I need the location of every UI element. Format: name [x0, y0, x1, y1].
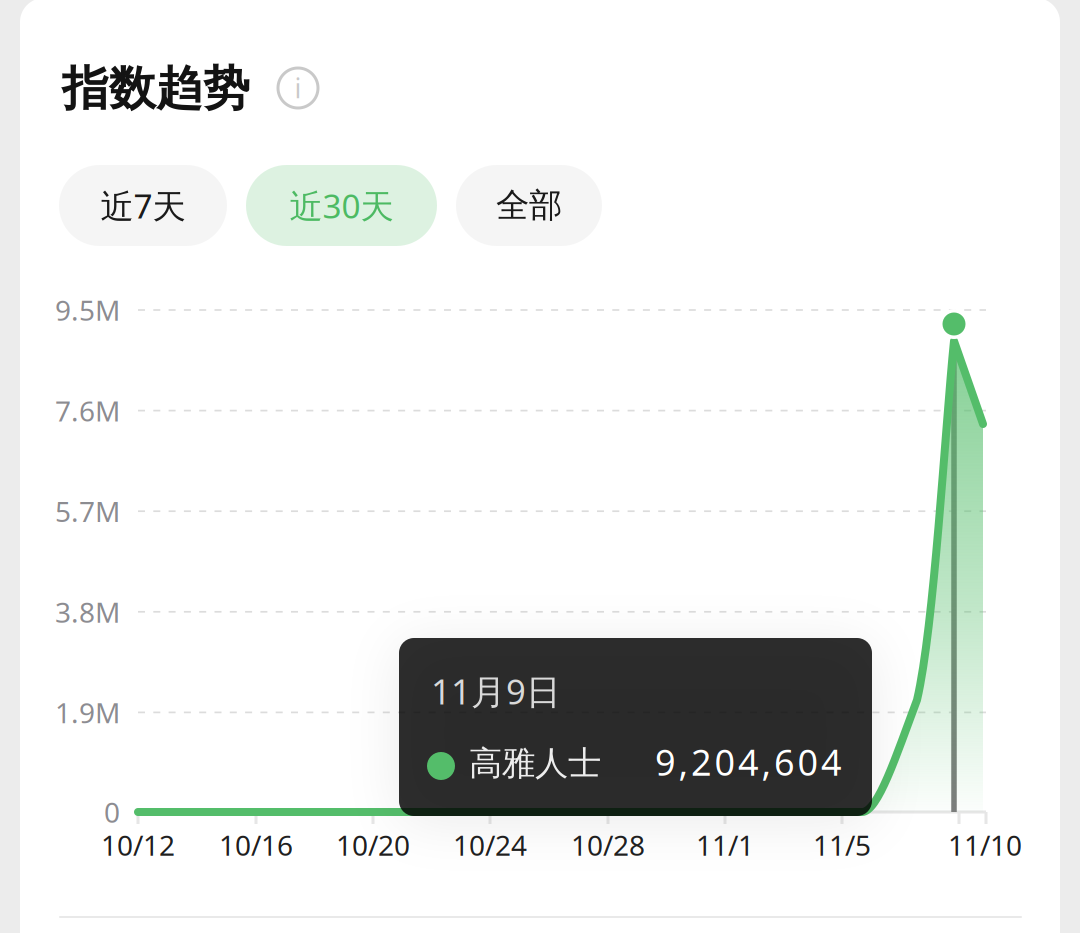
button[interactable]: 全部 [456, 165, 602, 246]
staticText: 10/12 [101, 826, 175, 864]
staticText: 全部 [496, 185, 562, 226]
staticText: 3.8M [55, 593, 120, 630]
staticText: 高雅人士 [469, 743, 601, 784]
staticText: i [294, 70, 301, 106]
staticText: 10/20 [336, 826, 410, 864]
staticText: 10/24 [453, 826, 527, 864]
staticText: 5.7M [55, 493, 120, 530]
staticText: 9.5M [55, 291, 120, 329]
button[interactable]: 近7天 [59, 165, 227, 246]
staticText: 11月9日 [431, 668, 561, 714]
staticText: 指数趋势 [62, 60, 250, 117]
staticText: 10/16 [219, 826, 293, 864]
staticText: 11/5 [813, 826, 871, 864]
staticText: 7.6M [55, 392, 120, 429]
staticText: 1.9M [55, 694, 120, 731]
staticText: 11/1 [696, 826, 754, 864]
staticText: 11/10 [948, 826, 1022, 864]
button[interactable]: 指数趋势说明 [270, 60, 326, 116]
button[interactable]: 近30天 [246, 165, 437, 246]
staticText: 0 [104, 793, 120, 831]
staticText: 近30天 [289, 183, 393, 228]
staticText: 10/28 [571, 826, 645, 864]
staticText: 9,204,604 [655, 738, 842, 786]
staticText: 近7天 [100, 183, 185, 228]
